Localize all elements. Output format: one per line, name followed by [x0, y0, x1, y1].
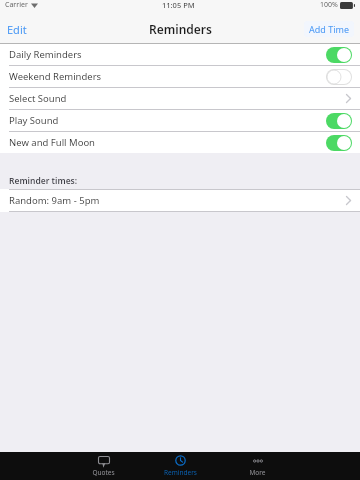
- button[interactable]: Daily Reminders: [0, 44, 360, 65]
- staticText: 100%: [320, 0, 338, 10]
- staticText: Select Sound: [9, 92, 67, 105]
- staticText: Weekend Reminders: [9, 70, 102, 83]
- staticText: Reminders: [164, 468, 197, 477]
- button[interactable]: Add Time: [304, 21, 354, 37]
- staticText: Daily Reminders: [9, 48, 82, 61]
- button[interactable]: Quotes: [65, 452, 142, 480]
- button[interactable]: Reminders: [142, 452, 219, 480]
- staticText: 11:05 PM: [162, 0, 195, 10]
- staticText: More: [249, 468, 266, 477]
- staticText: Add Time: [309, 23, 349, 35]
- staticText: Reminder times:: [9, 175, 78, 187]
- staticText: Edit: [7, 22, 27, 37]
- staticText: Quotes: [92, 468, 115, 477]
- button[interactable]: Random: 9am - 5pm: [0, 190, 360, 211]
- button[interactable]: Weekend Reminders: [0, 66, 360, 87]
- button[interactable]: New and Full Moon: [0, 132, 360, 153]
- staticText: New and Full Moon: [9, 136, 95, 149]
- staticText: Random: 9am - 5pm: [9, 194, 100, 207]
- button[interactable]: Edit: [7, 22, 27, 37]
- staticText: Carrier: [5, 0, 28, 10]
- button[interactable]: More: [219, 452, 296, 480]
- button[interactable]: Select Sound: [0, 88, 360, 109]
- staticText: Reminders: [149, 21, 212, 37]
- staticText: Play Sound: [9, 114, 59, 127]
- button[interactable]: Play Sound: [0, 110, 360, 131]
